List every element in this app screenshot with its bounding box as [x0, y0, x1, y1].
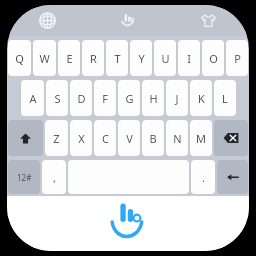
staticText: W — [39, 51, 50, 66]
button[interactable]: E — [58, 40, 80, 76]
staticText: V — [126, 131, 133, 146]
button[interactable]: 12# — [8, 160, 40, 194]
button[interactable]: P — [226, 40, 248, 76]
button[interactable]: F — [94, 80, 116, 116]
button[interactable]: J — [166, 80, 188, 116]
button[interactable]: C — [94, 120, 116, 156]
staticText: X — [78, 131, 85, 146]
staticText: L — [222, 91, 228, 106]
button[interactable]: Z — [45, 120, 68, 156]
button[interactable]: O — [202, 40, 224, 76]
staticText: P — [234, 51, 241, 66]
button[interactable]: U — [154, 40, 176, 76]
staticText: C — [102, 131, 109, 146]
staticText: R — [90, 51, 97, 66]
staticText: . — [202, 170, 205, 185]
staticText: D — [77, 91, 86, 106]
button[interactable]: Language — [7, 5, 87, 36]
staticText: , — [53, 170, 56, 185]
button[interactable]: N — [166, 120, 188, 156]
staticText: G — [125, 91, 134, 106]
staticText: E — [66, 51, 73, 66]
button[interactable]: Gesture input — [87, 5, 168, 36]
staticText: K — [198, 91, 205, 106]
staticText: Y — [138, 51, 145, 66]
button[interactable]: Y — [130, 40, 152, 76]
button[interactable]: K — [190, 80, 212, 116]
button[interactable]: W — [33, 40, 56, 76]
button[interactable]: D — [70, 80, 92, 116]
staticText: B — [149, 131, 157, 146]
staticText: Q — [15, 51, 24, 66]
button[interactable]: Backspace — [214, 120, 248, 156]
staticText: J — [175, 91, 179, 106]
staticText: F — [102, 91, 108, 106]
button[interactable]: I — [178, 40, 200, 76]
button[interactable]: S — [46, 80, 68, 116]
button[interactable]: Q — [8, 40, 31, 76]
staticText: 12# — [17, 172, 32, 183]
button[interactable]: G — [118, 80, 140, 116]
button[interactable]: M — [190, 120, 212, 156]
staticText: I — [187, 51, 191, 66]
button[interactable]: . — [191, 160, 215, 194]
button[interactable]: , — [42, 160, 66, 194]
staticText: T — [114, 51, 121, 66]
button[interactable]: Shift — [8, 120, 43, 156]
staticText: Z — [53, 131, 60, 146]
staticText: A — [29, 91, 37, 106]
button[interactable]: Themes — [168, 5, 249, 36]
staticText: M — [196, 131, 206, 146]
button[interactable]: H — [142, 80, 164, 116]
button[interactable]: Enter — [217, 160, 248, 194]
button[interactable]: B — [142, 120, 164, 156]
staticText: O — [209, 51, 218, 66]
button[interactable]: R — [82, 40, 104, 76]
button[interactable]: T — [106, 40, 128, 76]
staticText: S — [54, 91, 61, 106]
staticText: U — [161, 51, 170, 66]
staticText: H — [149, 91, 158, 106]
button[interactable]: V — [118, 120, 140, 156]
button[interactable]: X — [70, 120, 92, 156]
button[interactable]: L — [214, 80, 236, 116]
button[interactable]: A — [21, 80, 44, 116]
staticText: N — [173, 131, 182, 146]
